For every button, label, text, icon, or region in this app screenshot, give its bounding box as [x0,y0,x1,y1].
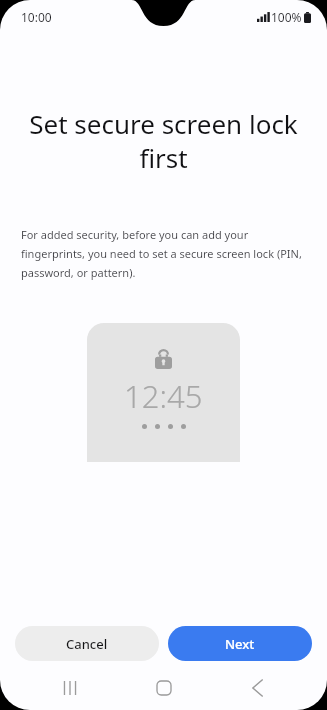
staticText: Next [225,635,255,653]
staticText: 100% [271,9,302,25]
staticText: For added security, before you can add y… [21,227,306,280]
button[interactable]: Cancel [15,626,159,661]
staticText: 12:45 [124,375,203,417]
button[interactable]: Back [233,666,281,710]
button[interactable]: Recent apps [46,666,94,710]
staticText: 10:00 [21,9,52,25]
staticText: Cancel [66,635,108,653]
staticText: Set secure screen lock first [22,106,305,175]
button[interactable]: Home [140,666,188,710]
button[interactable]: Next [168,626,312,661]
